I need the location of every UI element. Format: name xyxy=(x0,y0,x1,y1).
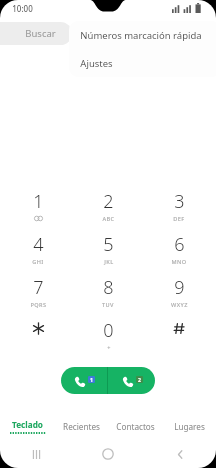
button[interactable]: Llamar con SIM 1 xyxy=(61,367,107,394)
staticText: 9 xyxy=(174,275,185,300)
staticText: Números marcación rápida xyxy=(80,29,202,42)
staticText: 7 xyxy=(33,275,44,300)
staticText: Recientes xyxy=(63,421,100,432)
button[interactable]: 4 xyxy=(5,229,71,272)
button[interactable]: 0 xyxy=(75,315,141,358)
staticText: Lugares xyxy=(174,421,205,432)
button[interactable]: 5 xyxy=(75,229,141,272)
button[interactable] xyxy=(146,315,212,358)
staticText: 2 xyxy=(138,376,141,383)
staticText: JKL xyxy=(104,258,114,266)
staticText: 10:00 xyxy=(12,3,33,14)
button[interactable]: 3 xyxy=(146,186,212,229)
button[interactable]: Lugares xyxy=(162,414,216,438)
staticText: 6 xyxy=(174,232,185,257)
staticText: Buscar xyxy=(25,27,56,40)
button[interactable]: Llamar con SIM 2 xyxy=(108,367,155,394)
staticText: Teclado xyxy=(12,419,43,430)
staticText: MNO xyxy=(171,258,187,266)
button[interactable]: Buscar xyxy=(0,22,72,45)
staticText: TUV xyxy=(102,301,114,309)
button[interactable]: Atrás xyxy=(144,440,216,468)
button[interactable]: 1 xyxy=(5,186,71,229)
staticText: 3 xyxy=(174,189,185,214)
button[interactable]: Números marcación rápida xyxy=(69,21,216,49)
button[interactable]: Ajustes xyxy=(69,49,216,77)
staticText: 0 xyxy=(103,318,114,343)
button[interactable]: Recientes xyxy=(54,414,108,438)
staticText: 1 xyxy=(90,376,93,383)
staticText: GHI xyxy=(32,258,44,266)
staticText: WXYZ xyxy=(171,301,188,309)
staticText: Ajustes xyxy=(80,57,113,70)
button[interactable] xyxy=(5,315,71,358)
button[interactable]: Contactos xyxy=(108,414,162,438)
staticText: 2 xyxy=(103,189,114,214)
button[interactable]: 8 xyxy=(75,272,141,315)
staticText: ABC xyxy=(102,215,115,223)
staticText: 8 xyxy=(103,275,114,300)
button[interactable]: 6 xyxy=(146,229,212,272)
staticText: DEF xyxy=(173,215,185,223)
staticText: + xyxy=(107,344,111,352)
staticText: 5 xyxy=(103,232,114,257)
button[interactable]: Inicio xyxy=(72,440,144,468)
staticText: Contactos xyxy=(116,421,155,432)
staticText: PQRS xyxy=(30,301,47,309)
button[interactable]: Teclado xyxy=(0,414,54,438)
staticText: 1 xyxy=(33,189,44,214)
button[interactable]: Recientes xyxy=(0,440,72,468)
button[interactable]: 7 xyxy=(5,272,71,315)
button[interactable]: 9 xyxy=(146,272,212,315)
staticText: 4 xyxy=(33,232,44,257)
button[interactable]: 2 xyxy=(75,186,141,229)
